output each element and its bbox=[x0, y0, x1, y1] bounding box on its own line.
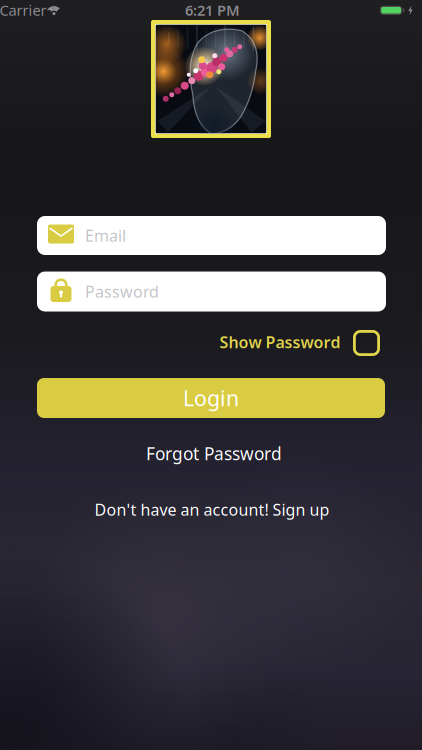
button[interactable]: Show Password bbox=[353, 330, 380, 356]
staticText: Don't have an account! Sign up bbox=[94, 499, 329, 520]
button[interactable]: Forgot Password bbox=[146, 442, 282, 465]
staticText: Carrier bbox=[0, 0, 46, 20]
button[interactable]: Password bbox=[37, 271, 386, 311]
button[interactable]: Login bbox=[37, 378, 385, 418]
staticText: Password bbox=[85, 281, 159, 302]
staticText: Email bbox=[85, 225, 126, 246]
button[interactable]: Email bbox=[37, 216, 386, 255]
staticText: 6:21 PM bbox=[185, 0, 240, 20]
staticText: Login bbox=[183, 384, 239, 412]
button[interactable]: Don't have an account! Sign up bbox=[94, 499, 329, 520]
staticText: Forgot Password bbox=[146, 442, 282, 465]
staticText: Show Password bbox=[219, 331, 340, 353]
